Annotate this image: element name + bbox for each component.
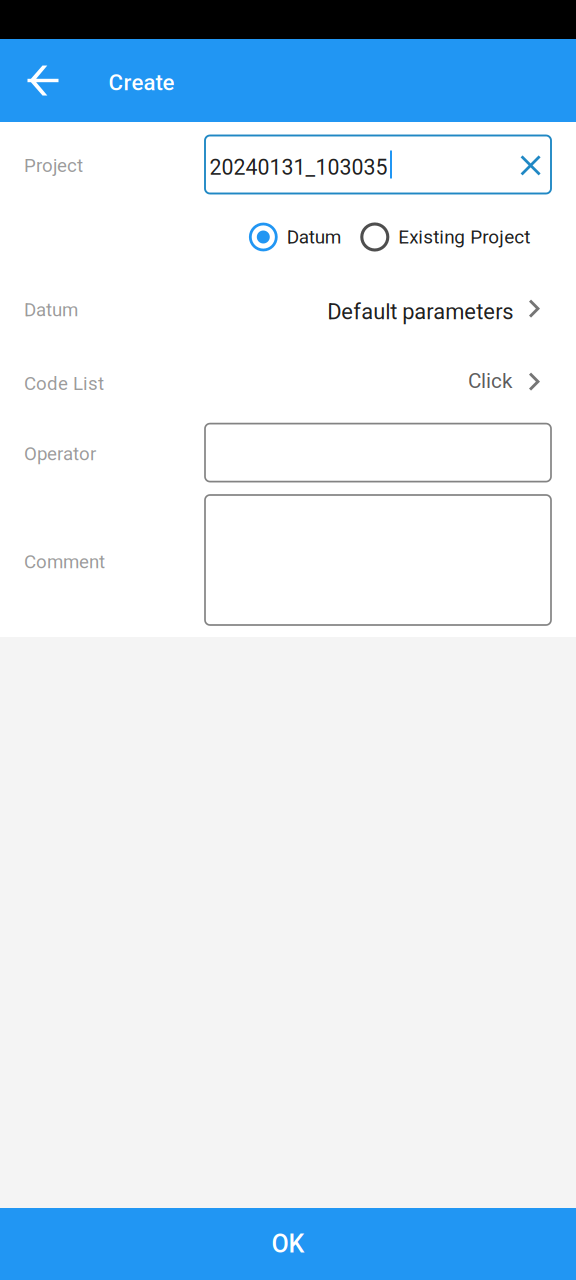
button[interactable]: Datum [0,277,576,343]
button[interactable]: Existing Project [360,215,530,259]
button[interactable]: Datum [249,215,342,259]
button[interactable]: Operator [205,424,551,482]
staticText: Datum [24,299,78,321]
button[interactable]: Project name [205,135,551,193]
staticText: Comment [24,551,105,573]
button[interactable]: Code List [0,350,576,416]
staticText: Code List [24,373,104,395]
button[interactable]: Clear [509,143,553,187]
button[interactable]: OK [0,1208,576,1280]
staticText: Datum [287,226,342,248]
staticText: Project [24,155,83,176]
staticText: Operator [24,443,96,465]
staticText: Existing Project [398,226,530,248]
staticText: 20240131_103035 [210,155,388,180]
staticText: Default parameters [327,299,513,325]
staticText: Create [108,70,174,96]
button[interactable]: Back [7,39,79,122]
staticText: Click [468,369,512,393]
button[interactable]: Comment [205,495,551,625]
staticText: OK [271,1229,304,1259]
